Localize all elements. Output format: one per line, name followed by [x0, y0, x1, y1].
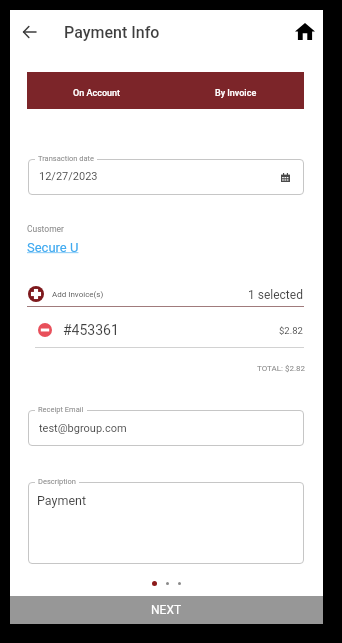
staticText: Secure U — [27, 240, 82, 255]
staticText: $2.82 — [279, 325, 303, 336]
button[interactable]: Home — [293, 20, 316, 43]
staticText: 1 selected — [248, 288, 303, 302]
staticText: Add Invoice(s) — [52, 290, 104, 299]
button[interactable]: Description — [28, 482, 304, 564]
staticText: Payment — [37, 493, 87, 508]
button[interactable]: Transaction date — [28, 159, 304, 195]
button[interactable]: On Account — [27, 72, 165, 109]
staticText: By Invoice — [215, 88, 257, 99]
staticText: Payment Info — [64, 23, 160, 42]
button[interactable]: Receipt Email — [28, 410, 304, 446]
button[interactable]: NEXT — [10, 596, 323, 624]
staticText: On Account — [73, 88, 121, 99]
staticText: TOTAL: $2.82 — [257, 364, 306, 373]
button[interactable]: Back — [19, 21, 40, 42]
button[interactable]: By Invoice — [165, 72, 304, 109]
staticText: Customer — [27, 224, 64, 234]
button[interactable]: Add Invoice(s) — [27, 285, 304, 307]
staticText: Description — [38, 477, 76, 486]
button[interactable]: #453361 — [27, 321, 304, 344]
staticText: 12/27/2023 — [39, 170, 98, 183]
staticText: Receipt Email — [38, 405, 84, 414]
button[interactable]: Secure U — [27, 240, 82, 255]
staticText: NEXT — [151, 603, 182, 617]
staticText: test@bgroup.com — [39, 422, 127, 435]
staticText: #453361 — [63, 322, 119, 338]
staticText: Transaction date — [38, 154, 94, 163]
